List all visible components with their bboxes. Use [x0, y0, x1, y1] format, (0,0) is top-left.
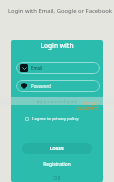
button[interactable]: I agree to privacy policy: [25, 116, 79, 122]
staticText: Email: [31, 65, 43, 71]
staticText: Login with: [11, 41, 103, 50]
staticText: Password: [31, 83, 51, 89]
button[interactable]: Registration: [11, 161, 103, 168]
staticText: I agree to privacy policy: [32, 116, 79, 122]
button[interactable]: Forgot password: [11, 100, 98, 111]
button[interactable]: LOGIN: [22, 143, 92, 154]
staticText: OR: [11, 175, 103, 182]
staticText: LOGIN: [50, 146, 64, 152]
staticText: A p p L a u n c h p a d: [37, 99, 77, 104]
staticText: Login with Email, Google or Facebook: [8, 7, 112, 15]
button[interactable]: Password: [16, 80, 100, 92]
button[interactable]: Email: [16, 62, 100, 74]
